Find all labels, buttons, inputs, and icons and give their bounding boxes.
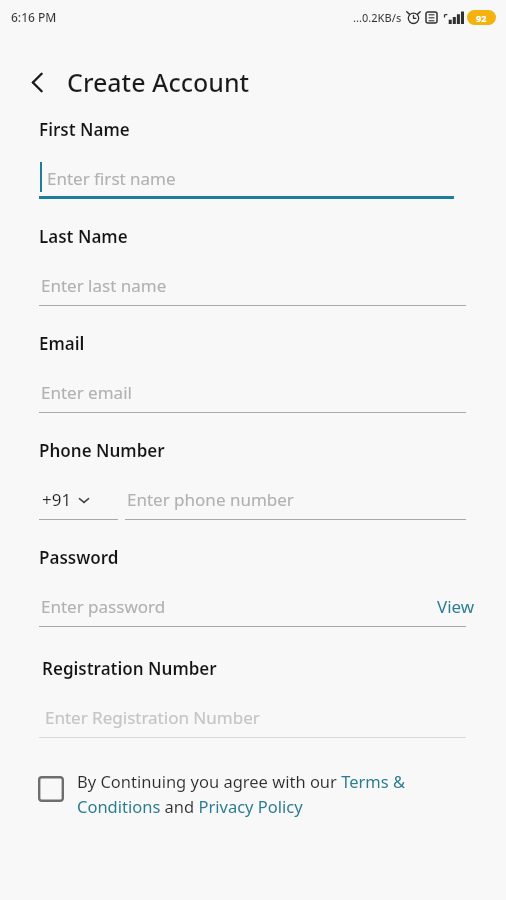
button[interactable]: Accept terms and conditions <box>38 770 486 818</box>
staticText: Enter password <box>41 595 166 618</box>
staticText: Enter first name <box>47 167 176 190</box>
staticText: Enter last name <box>41 274 167 297</box>
staticText: First Name <box>39 118 130 141</box>
staticText: By Continuing you agree with our Terms &… <box>77 770 486 818</box>
button[interactable]: Enter first name <box>0 157 506 199</box>
staticText: Phone Number <box>39 439 165 462</box>
staticText: View <box>437 595 475 618</box>
staticText: +91 <box>42 488 72 511</box>
staticText: Registration Number <box>42 657 217 680</box>
staticText: 6:16 PM <box>11 9 57 25</box>
button[interactable]: Accept terms and conditions <box>38 776 64 802</box>
staticText: Last Name <box>39 225 128 248</box>
staticText: Enter phone number <box>127 488 294 511</box>
staticText: Password <box>39 546 119 569</box>
button[interactable]: Enter last name <box>0 264 506 306</box>
staticText: 92 <box>476 12 487 24</box>
button[interactable]: View <box>437 595 475 618</box>
button[interactable]: Back <box>17 62 57 102</box>
staticText: ...0.2KB/s <box>353 10 402 25</box>
staticText: Create Account <box>67 65 250 99</box>
button[interactable]: Enter email <box>0 371 506 413</box>
staticText: Enter email <box>41 381 132 404</box>
staticText: Enter Registration Number <box>45 706 260 729</box>
staticText: Email <box>39 332 85 355</box>
button[interactable] <box>0 585 506 627</box>
button[interactable]: Enter Registration Number <box>0 696 506 738</box>
button[interactable]: +91 <box>42 488 90 511</box>
